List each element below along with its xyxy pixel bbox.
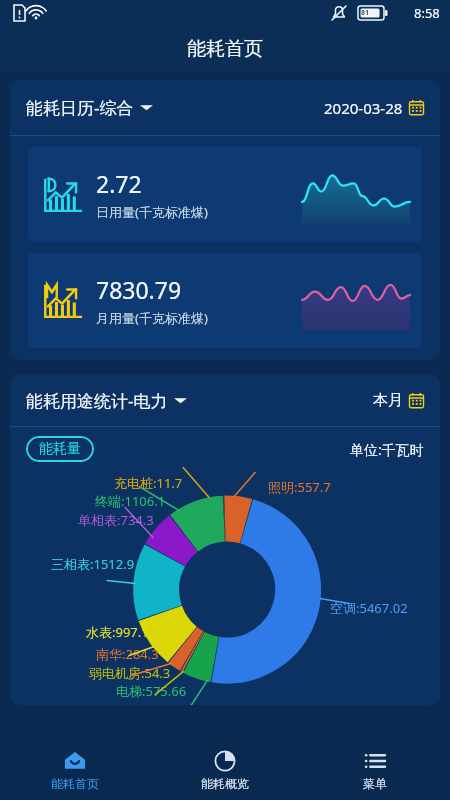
staticText: 能耗日历-综合 <box>26 96 134 119</box>
staticText: 菜单 <box>363 776 387 791</box>
staticText: 弱电机房:54.3 <box>89 664 171 682</box>
staticText: 8:58 <box>414 4 440 22</box>
staticText: 充电桩:11.7 <box>114 474 183 492</box>
staticText: 能耗概览 <box>201 776 249 791</box>
staticText: 电梯:575.66 <box>116 682 187 700</box>
staticText: 能耗首页 <box>51 776 99 791</box>
button[interactable]: 能耗用途统计-电力 <box>10 374 440 426</box>
staticText: 水表:997.1 <box>86 623 149 641</box>
staticText: 本月 <box>373 391 403 410</box>
staticText: 能耗首页 <box>187 37 263 61</box>
button[interactable]: 2.72 <box>28 147 422 242</box>
staticText: 空调:5467.02 <box>330 599 408 617</box>
staticText: 2.72 <box>96 168 142 199</box>
button[interactable]: 能耗量 <box>26 436 94 462</box>
button[interactable]: 能耗概览 <box>150 742 300 800</box>
button[interactable]: 能耗日历-综合 <box>10 80 440 135</box>
staticText: 能耗量 <box>39 440 81 458</box>
staticText: 能耗用途统计-电力 <box>26 389 168 412</box>
staticText: 照明:557.7 <box>268 478 331 496</box>
staticText: 南华:284.3 <box>96 645 159 663</box>
staticText: 单位:千瓦时 <box>350 440 424 459</box>
button[interactable]: 7830.79 <box>28 253 422 348</box>
staticText: 81 <box>361 8 370 18</box>
staticText: 日用量(千克标准煤) <box>96 203 208 221</box>
button[interactable]: 菜单 <box>300 742 450 800</box>
button[interactable]: 能耗首页 <box>0 742 150 800</box>
staticText: 月用量(千克标准煤) <box>96 309 208 327</box>
staticText: 单相表:734.3 <box>78 511 154 529</box>
staticText: 终端:1106.1 <box>95 492 166 510</box>
staticText: 2020-03-28 <box>324 98 403 118</box>
staticText: 三相表:1512.9 <box>51 555 135 573</box>
staticText: 7830.79 <box>96 274 182 305</box>
